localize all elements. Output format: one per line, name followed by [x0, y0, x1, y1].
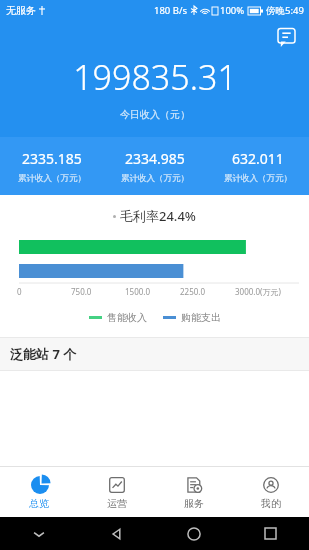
staticText: 毛利率24.4% [120, 207, 196, 225]
button[interactable]: 2334.985 [103, 137, 206, 195]
button[interactable]: 服务 [155, 467, 232, 517]
staticText: 3000.0(万元) [235, 286, 281, 297]
other: Back [110, 527, 124, 541]
staticText: 泛能站 7 个 [10, 345, 77, 363]
staticText: 632.011 [232, 149, 284, 168]
staticText: 服务 [184, 497, 204, 510]
staticText: 傍晚5:49 [266, 4, 304, 17]
staticText: 购能支出 [181, 311, 221, 324]
staticText: 0 [17, 286, 22, 297]
button[interactable]: 总览 [0, 467, 78, 517]
staticText: 1500.0 [125, 286, 151, 297]
staticText: 199835.31 [73, 54, 237, 100]
staticText: 180 B/s [154, 4, 188, 17]
staticText: 运营 [107, 497, 127, 510]
staticText: 无服务 [6, 4, 36, 17]
staticText: 2250.0 [180, 286, 206, 297]
button[interactable]: 632.011 [206, 137, 309, 195]
staticText: 累计收入（万元） [224, 173, 292, 184]
other: Recent apps [265, 528, 276, 539]
staticText: 今日收入（元） [120, 108, 190, 121]
staticText: 2335.185 [22, 149, 82, 168]
button[interactable]: 2335.185 [0, 137, 103, 195]
staticText: 累计收入（万元） [121, 173, 189, 184]
button[interactable]: 泛能站 7 个 [0, 338, 309, 370]
staticText: 2334.985 [125, 149, 185, 168]
staticText: 我的 [261, 497, 281, 510]
button[interactable]: 运营 [78, 467, 155, 517]
other: Hide keyboard [32, 527, 46, 541]
staticText: 累计收入（万元） [18, 173, 86, 184]
staticText: 750.0 [71, 286, 92, 297]
staticText: 100% [220, 4, 245, 17]
staticText: 售能收入 [107, 311, 147, 324]
other: Home [187, 527, 201, 541]
staticText: 总览 [29, 497, 49, 510]
button[interactable]: 我的 [232, 467, 309, 517]
button[interactable]: Messages [273, 24, 299, 50]
